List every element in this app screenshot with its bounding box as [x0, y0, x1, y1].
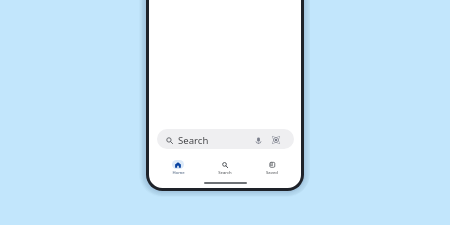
staticText: Home: [172, 170, 185, 176]
staticText: Search: [218, 170, 232, 176]
other: Search with Google Lens: [272, 136, 280, 144]
other: Search by voice: [255, 137, 262, 144]
button[interactable]: Search: [157, 129, 294, 149]
staticText: Saved: [266, 170, 278, 176]
staticText: Search: [178, 134, 209, 147]
button[interactable]: Search: [207, 158, 243, 176]
button[interactable]: Saved: [254, 158, 290, 176]
button[interactable]: Home: [160, 158, 196, 176]
